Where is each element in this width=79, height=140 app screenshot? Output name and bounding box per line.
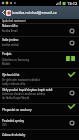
button[interactable] [0, 36, 79, 51]
staticText: Mobile [2, 62, 11, 66]
button[interactable]: Back [0, 6, 6, 19]
staticText: 13:12 [67, 1, 78, 6]
staticText: Podpis [2, 52, 66, 56]
staticText: Název účtu [2, 24, 66, 28]
staticText: do řádku Kopie/Skrytá [2, 96, 30, 100]
button[interactable] [0, 68, 79, 87]
staticText: Ve výchozím nastavení odesílat [2, 78, 40, 82]
staticText: kostka.michal@email.cz [12, 10, 57, 15]
staticText: 250 [2, 123, 7, 127]
staticText: Přeposlat se soubory [2, 108, 66, 112]
button[interactable] [0, 103, 79, 115]
staticText: Vaše jméno [2, 38, 66, 42]
button[interactable] [0, 23, 79, 36]
staticText: kostka michal [2, 43, 19, 47]
staticText: Zahrnout vlastní e-mailovou adresu [2, 92, 46, 96]
staticText: Výchozí účet [2, 73, 66, 77]
staticText: Společné nastavení [2, 19, 26, 23]
staticText: Odesláno ze Samsung [2, 58, 30, 62]
staticText: Kostka Email [2, 29, 18, 33]
staticText: maily z tohoto účtu [2, 82, 26, 86]
button[interactable] [0, 51, 79, 68]
button[interactable] [0, 115, 79, 129]
button[interactable] [0, 129, 79, 140]
staticText: Zobrazit obrázky [2, 133, 66, 137]
staticText: Poslední zprávy [2, 119, 66, 123]
button[interactable] [0, 87, 79, 103]
staticText: Vždy poslat kopii/skrytou kopii sobě [2, 88, 66, 92]
